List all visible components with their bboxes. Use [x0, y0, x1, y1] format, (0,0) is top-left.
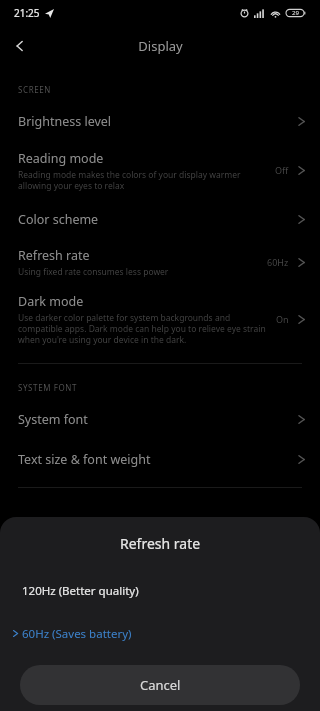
staticText: 60Hz (Saves battery): [22, 626, 132, 642]
staticText: Using fixed rate consumes less power: [18, 266, 169, 278]
staticText: On: [276, 313, 289, 325]
staticText: SYSTEM FONT: [18, 382, 78, 393]
staticText: Text size & font weight: [18, 451, 151, 468]
staticText: Dark mode: [18, 293, 84, 310]
staticText: 21:25: [14, 6, 40, 20]
staticText: Reading mode makes the colors of your di…: [18, 169, 275, 191]
button[interactable]: Back: [0, 26, 40, 66]
staticText: System font: [18, 411, 88, 428]
staticText: 120Hz (Better quality): [22, 583, 139, 599]
button[interactable]: Refresh rate: [0, 239, 320, 285]
button[interactable]: Dark mode: [0, 285, 320, 353]
staticText: 60Hz: [267, 256, 289, 268]
staticText: Cancel: [140, 676, 181, 694]
staticText: 29: [292, 9, 299, 17]
button[interactable]: Text size & font weight: [0, 439, 320, 479]
staticText: Refresh rate: [18, 247, 90, 264]
button[interactable]: System font: [0, 399, 320, 439]
button[interactable]: Reading mode: [0, 141, 320, 199]
staticText: Use darker color palette for system back…: [18, 312, 276, 345]
button[interactable]: 60Hz (Saves battery): [0, 612, 320, 655]
button[interactable]: Brightness level: [0, 101, 320, 141]
staticText: Color scheme: [18, 211, 99, 228]
staticText: SCREEN: [18, 84, 51, 95]
button[interactable]: Cancel: [20, 665, 300, 705]
staticText: Refresh rate: [120, 534, 201, 553]
staticText: Display: [138, 37, 183, 55]
button[interactable]: Color scheme: [0, 199, 320, 239]
button[interactable]: 120Hz (Better quality): [0, 569, 320, 612]
staticText: Off: [275, 164, 289, 176]
staticText: Brightness level: [18, 113, 112, 130]
staticText: Reading mode: [18, 150, 104, 167]
